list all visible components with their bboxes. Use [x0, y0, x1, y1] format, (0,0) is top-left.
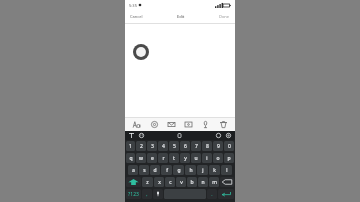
staticText: p	[227, 155, 231, 162]
button[interactable]: l	[221, 165, 232, 175]
staticText: s	[143, 167, 146, 174]
button[interactable]: e	[147, 153, 157, 163]
button[interactable]: Emoji	[138, 132, 145, 139]
button[interactable]: r	[158, 153, 168, 163]
staticText: v	[180, 179, 183, 186]
button[interactable]: 1	[126, 141, 135, 151]
button[interactable]: 0	[224, 141, 234, 151]
button[interactable]: Text format	[131, 119, 142, 130]
staticText: 0	[228, 143, 231, 150]
button[interactable]: Cancel	[129, 12, 144, 21]
button[interactable]: Shift	[126, 177, 141, 187]
button[interactable]: 7	[191, 141, 201, 151]
button[interactable]: y	[180, 153, 190, 163]
button[interactable]: j	[197, 165, 208, 175]
button[interactable]: b	[187, 177, 197, 187]
staticText: d	[153, 167, 157, 174]
button[interactable]: t	[169, 153, 179, 163]
staticText: 3	[151, 143, 154, 150]
button[interactable]: p	[224, 153, 234, 163]
button[interactable]: Settings	[225, 132, 232, 139]
button[interactable]: g	[173, 165, 184, 175]
staticText: 4	[162, 143, 165, 150]
staticText: n	[201, 179, 205, 186]
button[interactable]: Enter	[218, 189, 234, 199]
button[interactable]: Backspace	[220, 177, 234, 187]
button[interactable]: d	[150, 165, 160, 175]
staticText: y	[184, 155, 187, 162]
staticText: ,	[146, 191, 148, 198]
staticText: e	[151, 155, 154, 162]
staticText: w	[139, 155, 143, 162]
staticText: 1	[129, 143, 132, 150]
button[interactable]: x	[154, 177, 164, 187]
button[interactable]: n	[198, 177, 208, 187]
staticText: q	[129, 155, 133, 162]
staticText: .	[211, 191, 213, 198]
staticText: h	[189, 167, 193, 174]
button[interactable]: Delete	[218, 119, 229, 130]
staticText: 9	[217, 143, 220, 150]
button[interactable]: Clipboard	[176, 132, 183, 139]
staticText: Done	[219, 14, 230, 19]
button[interactable]: Done	[218, 12, 231, 21]
button[interactable]: Theme	[215, 132, 222, 139]
button[interactable]: m	[209, 177, 219, 187]
staticText: 5	[173, 143, 176, 150]
button[interactable]: u	[191, 153, 201, 163]
button[interactable]: 8	[202, 141, 212, 151]
button[interactable]: Voice	[200, 119, 211, 130]
button[interactable]: a	[128, 165, 138, 175]
staticText: 7	[195, 143, 198, 150]
staticText: b	[190, 179, 194, 186]
button[interactable]: s	[139, 165, 149, 175]
button[interactable]: i	[202, 153, 212, 163]
staticText: m	[212, 179, 217, 186]
staticText: f	[166, 167, 168, 174]
staticText: j	[202, 167, 204, 174]
button[interactable]: ,	[142, 189, 152, 199]
staticText: z	[146, 179, 149, 186]
button[interactable]: f	[161, 165, 172, 175]
button[interactable]: 6	[180, 141, 190, 151]
staticText: u	[194, 155, 198, 162]
button[interactable]: 5	[169, 141, 179, 151]
button[interactable]: Attach	[166, 119, 177, 130]
button[interactable]: .	[207, 189, 217, 199]
staticText: a	[132, 167, 135, 174]
button[interactable]: ?123	[126, 189, 141, 199]
button[interactable]: 4	[158, 141, 168, 151]
staticText: c	[169, 179, 172, 186]
button[interactable]: v	[176, 177, 186, 187]
button[interactable]: q	[126, 153, 135, 163]
staticText: r	[162, 155, 165, 162]
button[interactable]: Camera	[149, 119, 160, 130]
staticText: 5:35	[129, 3, 137, 8]
button[interactable]: k	[209, 165, 220, 175]
staticText: ?123	[128, 191, 139, 198]
staticText: Cancel	[130, 14, 143, 19]
button[interactable]: Edit	[176, 12, 186, 21]
button[interactable]: Photo	[183, 119, 194, 130]
button[interactable]: w	[136, 153, 146, 163]
staticText: 8	[206, 143, 209, 150]
staticText: i	[206, 155, 208, 162]
button[interactable]: z	[142, 177, 153, 187]
staticText: o	[216, 155, 220, 162]
button[interactable]: c	[165, 177, 175, 187]
button[interactable]: Language	[128, 132, 135, 139]
button[interactable]: h	[185, 165, 196, 175]
staticText: l	[226, 167, 228, 174]
staticText: 2	[140, 143, 143, 150]
button[interactable]: 2	[136, 141, 146, 151]
button[interactable]: o	[213, 153, 223, 163]
button[interactable]: 9	[213, 141, 223, 151]
staticText: Edit	[177, 14, 185, 19]
button[interactable]: Profile	[133, 44, 149, 60]
staticText: g	[177, 167, 181, 174]
button[interactable]: Voice input	[153, 189, 163, 199]
button[interactable]: 3	[147, 141, 157, 151]
staticText: t	[173, 155, 175, 162]
